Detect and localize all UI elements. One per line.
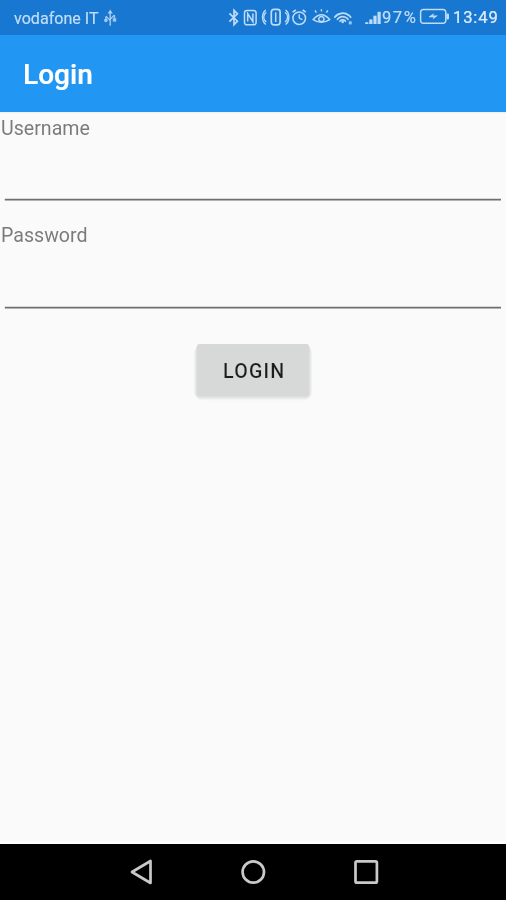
button[interactable]: Back <box>110 844 174 900</box>
button[interactable]: Password <box>0 220 506 312</box>
button[interactable]: Recent apps <box>334 844 398 900</box>
staticText: vodafone IT <box>14 9 99 28</box>
staticText: 97% <box>382 8 418 27</box>
button[interactable]: Home <box>221 844 285 900</box>
staticText: Username <box>1 117 90 140</box>
staticText: 13:49 <box>453 8 499 27</box>
staticText: Login <box>23 58 93 91</box>
staticText: LOGIN <box>223 360 286 383</box>
staticText: Password <box>1 224 88 247</box>
button[interactable]: Username <box>0 113 506 203</box>
button[interactable]: LOGIN <box>197 344 309 396</box>
